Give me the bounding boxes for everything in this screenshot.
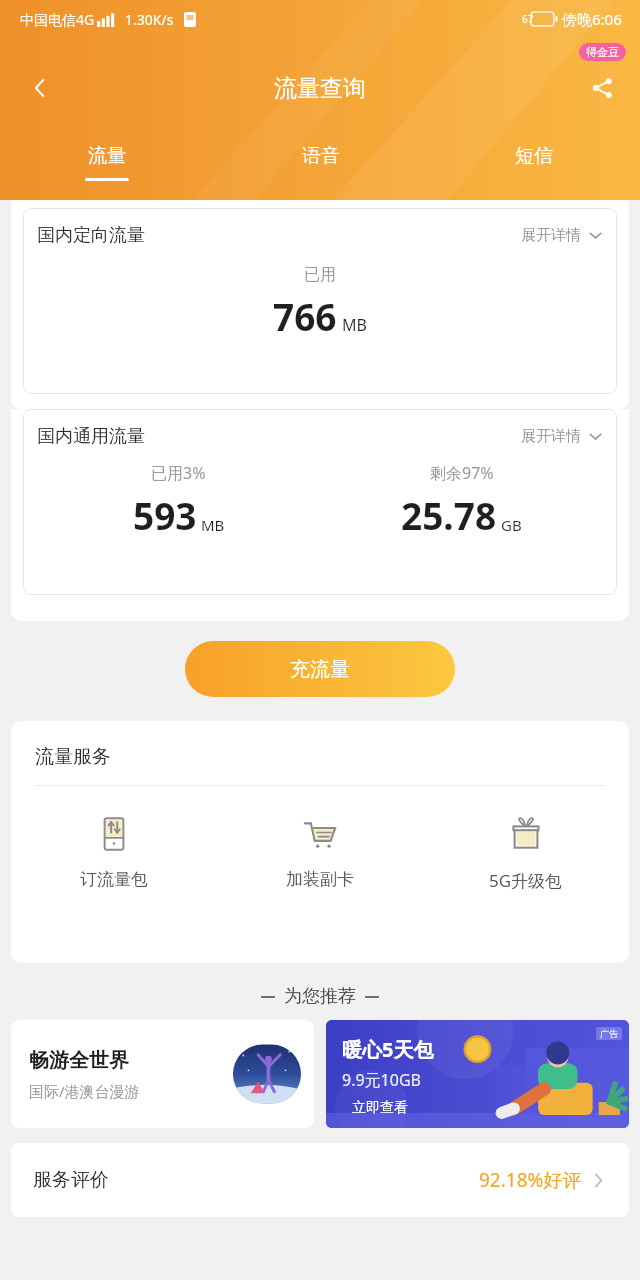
staticText: 67 [522, 12, 534, 26]
staticText: 国际/港澳台漫游 [29, 1081, 140, 1101]
staticText: 已用 [304, 265, 336, 285]
staticText: 92.18%好评 [479, 1167, 582, 1193]
staticText: 为您推荐 [284, 985, 356, 1008]
button[interactable]: 短信 [427, 140, 640, 200]
staticText: GB [501, 515, 522, 535]
staticText: 广告 [600, 1028, 618, 1039]
button[interactable]: 语音 [214, 140, 427, 200]
staticText: 加装副卡 [286, 869, 354, 890]
staticText: 9.9元10GB [342, 1069, 421, 1091]
button[interactable]: 国内定向流量 [23, 208, 617, 394]
staticText: 国内定向流量 [37, 224, 145, 247]
button[interactable]: 畅游全世界 [11, 1020, 314, 1128]
staticText: 展开详情 [521, 427, 581, 446]
button[interactable]: 暖心5天包 [326, 1020, 629, 1128]
staticText: 畅游全世界 [29, 1048, 129, 1073]
staticText: 暖心5天包 [342, 1036, 434, 1063]
staticText: 25.78 [401, 490, 497, 540]
staticText: 傍晚6:06 [562, 9, 622, 29]
staticText: 订流量包 [80, 869, 148, 890]
button[interactable]: 5G升级包 [423, 812, 629, 892]
button[interactable]: 得金豆 [579, 43, 626, 61]
staticText: 766 [273, 291, 337, 341]
staticText: 1.30K/s [125, 10, 174, 29]
staticText: 国内通用流量 [37, 425, 145, 448]
staticText: 流量 [88, 144, 126, 168]
button[interactable]: Share [578, 64, 626, 112]
button[interactable]: 国内通用流量 [23, 409, 617, 595]
staticText: 立即查看 [352, 1099, 408, 1117]
staticText: 服务评价 [33, 1168, 109, 1192]
button[interactable]: 加装副卡 [217, 812, 423, 890]
staticText: MB [342, 314, 367, 336]
staticText: 593 [133, 490, 197, 540]
staticText: 已用3% [151, 462, 206, 484]
button[interactable]: Back [16, 64, 64, 112]
staticText: 流量查询 [274, 74, 366, 103]
button[interactable]: 充流量 [185, 641, 455, 697]
staticText: 中国电信4G [20, 10, 95, 29]
staticText: 充流量 [290, 657, 350, 682]
staticText: 5G升级包 [489, 869, 563, 892]
staticText: 剩余97% [430, 462, 494, 484]
staticText: MB [201, 515, 225, 535]
staticText: 流量服务 [35, 745, 111, 769]
button[interactable]: 订流量包 [11, 812, 217, 890]
button[interactable]: 流量 [0, 140, 214, 200]
staticText: 语音 [302, 144, 340, 168]
staticText: 展开详情 [521, 226, 581, 245]
staticText: 得金豆 [586, 45, 619, 59]
staticText: 短信 [515, 144, 553, 168]
button[interactable]: 服务评价 [11, 1143, 629, 1217]
